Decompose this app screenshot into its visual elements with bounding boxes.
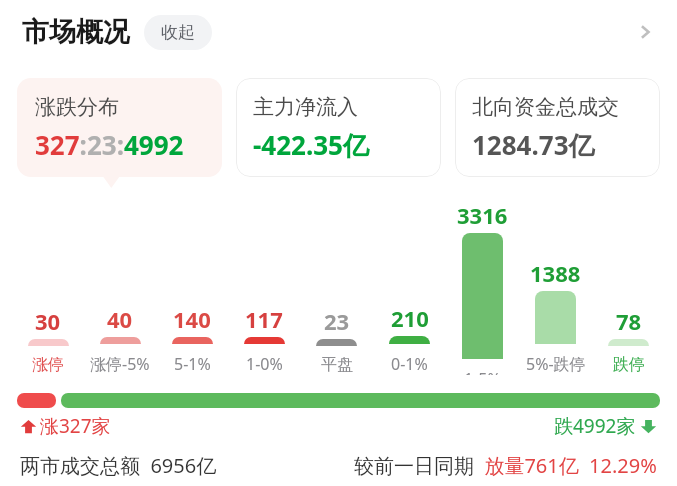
button[interactable]: 北向资金总成交 xyxy=(455,78,660,177)
staticText: 210 xyxy=(391,303,429,333)
staticText: -422.35亿 xyxy=(253,127,369,163)
staticText: 1-0% xyxy=(246,353,283,375)
staticText: 5%-跌停 xyxy=(526,353,586,375)
staticText: 两市成交总额 6956亿 xyxy=(20,452,217,479)
staticText: 40 xyxy=(107,304,133,334)
staticText: 涨停 xyxy=(32,355,64,375)
staticText: 30 xyxy=(35,306,61,336)
staticText: 收起 xyxy=(161,22,195,43)
button[interactable]: 涨跌分布 xyxy=(17,78,222,177)
staticText: 涨跌分布 xyxy=(35,94,119,120)
button[interactable]: 主力净流入 xyxy=(236,78,441,177)
button[interactable]: 收起 xyxy=(144,15,212,50)
staticText: 23 xyxy=(324,306,350,336)
staticText: 78 xyxy=(616,306,642,336)
staticText: 涨停-5% xyxy=(90,353,150,375)
staticText: 117 xyxy=(245,304,283,334)
staticText: 1-5% xyxy=(464,368,501,375)
staticText: 涨327家 xyxy=(40,413,111,439)
staticText: 北向资金总成交 xyxy=(472,94,619,120)
staticText: 1284.73亿 xyxy=(472,127,595,163)
button[interactable]: More xyxy=(623,10,667,54)
staticText: 5-1% xyxy=(174,353,211,375)
staticText: 1388 xyxy=(530,258,581,288)
staticText: 3316 xyxy=(457,200,508,230)
staticText: 跌停 xyxy=(613,355,645,375)
staticText: 较前一日同期 放量761亿 12.29% xyxy=(354,452,657,479)
staticText: 140 xyxy=(173,304,211,334)
staticText: 主力净流入 xyxy=(253,94,358,120)
staticText: 市场概况 xyxy=(22,15,130,49)
staticText: 平盘 xyxy=(321,355,353,375)
staticText: 327:23:4992 xyxy=(35,127,184,162)
staticText: 0-1% xyxy=(391,353,428,375)
staticText: 跌4992家 xyxy=(554,413,636,439)
